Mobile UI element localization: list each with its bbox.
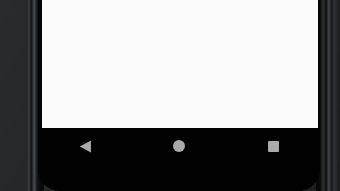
button[interactable]: Back xyxy=(38,128,132,164)
button[interactable]: Recent apps xyxy=(226,128,320,164)
button[interactable]: Home xyxy=(132,128,226,164)
